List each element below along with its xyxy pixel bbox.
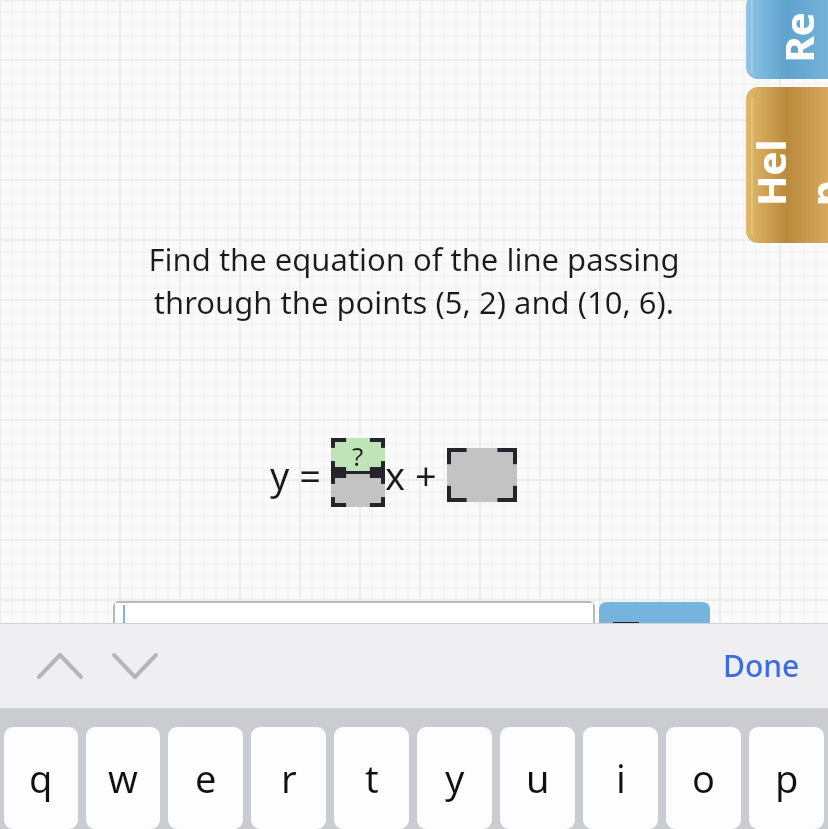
button[interactable]: ? <box>331 438 385 471</box>
staticText: t <box>365 752 379 804</box>
button[interactable]: y <box>417 727 492 829</box>
button[interactable]: Help <box>746 87 828 243</box>
staticText: y = <box>270 449 331 501</box>
button[interactable]: u <box>500 727 575 829</box>
button[interactable]: i <box>583 727 658 829</box>
button[interactable]: Done <box>723 645 800 686</box>
button[interactable]: o <box>666 727 741 829</box>
button[interactable] <box>331 474 385 507</box>
staticText: r <box>281 752 297 804</box>
staticText: Find the equation of the line passing th… <box>134 238 694 323</box>
staticText: e <box>195 752 217 804</box>
button[interactable]: Re <box>746 0 828 79</box>
staticText: o <box>692 752 715 804</box>
button[interactable]: w <box>86 727 160 829</box>
staticText: Re <box>770 11 824 62</box>
staticText: ? <box>352 438 364 471</box>
button[interactable] <box>447 448 517 502</box>
button[interactable]: e <box>168 727 243 829</box>
staticText: y <box>445 752 465 804</box>
staticText: Help <box>746 124 828 206</box>
staticText: q <box>29 752 53 804</box>
staticText: Done <box>723 645 800 686</box>
button[interactable]: t <box>334 727 409 829</box>
button[interactable]: Previous field <box>24 630 96 702</box>
staticText: i <box>616 752 626 804</box>
staticText: u <box>526 752 550 804</box>
button[interactable]: Next field <box>99 630 171 702</box>
staticText: p <box>775 752 799 804</box>
button[interactable]: p <box>749 727 824 829</box>
button[interactable]: r <box>251 727 326 829</box>
button[interactable] <box>599 602 710 631</box>
button[interactable] <box>115 603 593 629</box>
staticText: x + <box>385 449 447 501</box>
button[interactable]: q <box>4 727 78 829</box>
staticText: w <box>108 752 138 804</box>
